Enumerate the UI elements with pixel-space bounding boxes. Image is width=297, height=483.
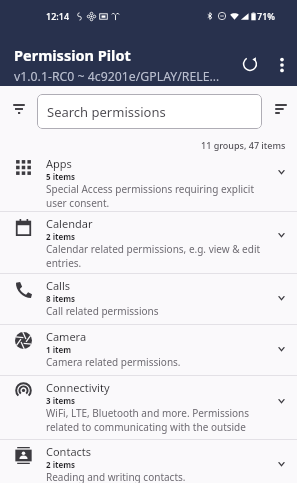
staticText: WiFi, LTE, Bluetooth and more. Permissio… bbox=[46, 406, 262, 433]
button[interactable]: Camera bbox=[0, 325, 297, 375]
button[interactable]: Sort bbox=[262, 94, 297, 130]
staticText: 11 groups, 47 items bbox=[201, 139, 286, 151]
button[interactable]: Contacts bbox=[0, 440, 297, 483]
button[interactable]: Apps bbox=[0, 152, 297, 211]
button[interactable]: Calls bbox=[0, 274, 297, 324]
staticText: Calls bbox=[46, 278, 71, 293]
button[interactable]: More options bbox=[267, 50, 297, 80]
button[interactable]: Search permissions bbox=[37, 94, 262, 129]
staticText: 2 items bbox=[46, 459, 76, 470]
staticText: Contacts bbox=[46, 444, 92, 459]
button[interactable]: Calendar bbox=[0, 212, 297, 273]
staticText: 71% bbox=[257, 10, 275, 22]
staticText: 12:14 bbox=[46, 10, 70, 22]
staticText: Reading and writing contacts. bbox=[46, 470, 186, 483]
staticText: Call related permissions bbox=[46, 304, 159, 318]
staticText: Calendar related permissions, e.g. view … bbox=[46, 242, 262, 269]
staticText: 1 item bbox=[46, 344, 72, 355]
staticText: 2 items bbox=[46, 231, 76, 242]
staticText: v1.0.1-RC0 ~ 4c9201e/GPLAY/RELE… bbox=[14, 68, 220, 85]
staticText: Apps bbox=[46, 156, 72, 171]
staticText: Connectivity bbox=[46, 380, 110, 395]
staticText: 5 items bbox=[46, 171, 76, 182]
staticText: Search permissions bbox=[47, 103, 166, 121]
staticText: 3 items bbox=[46, 395, 76, 406]
staticText: Calendar bbox=[46, 216, 93, 231]
staticText: Camera bbox=[46, 329, 87, 344]
button[interactable]: Refresh bbox=[233, 47, 267, 81]
button[interactable]: Connectivity bbox=[0, 376, 297, 439]
staticText: Permission Pilot bbox=[14, 45, 131, 65]
staticText: 8 items bbox=[46, 293, 76, 304]
staticText: Special Access permissions requiring exp… bbox=[46, 182, 262, 209]
button[interactable]: Filter bbox=[0, 94, 37, 130]
staticText: Camera related permissions. bbox=[46, 355, 181, 369]
